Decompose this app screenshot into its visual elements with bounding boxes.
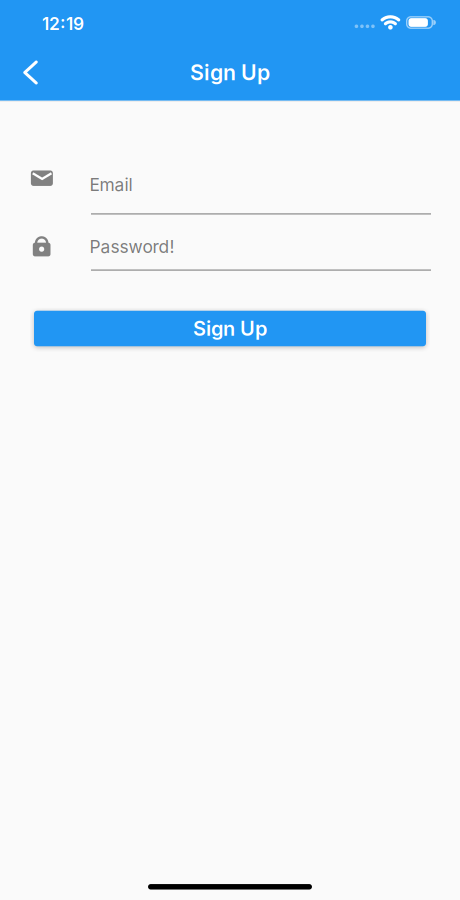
staticText: Sign Up [190, 60, 270, 85]
button[interactable]: Password! [0, 225, 460, 285]
button[interactable]: Email [0, 160, 460, 230]
button[interactable]: Sign Up [34, 311, 426, 346]
staticText: 12:19 [42, 14, 84, 34]
button[interactable] [0, 48, 56, 100]
staticText: Password! [89, 237, 174, 257]
staticText: Sign Up [193, 317, 267, 340]
staticText: Email [89, 174, 132, 195]
